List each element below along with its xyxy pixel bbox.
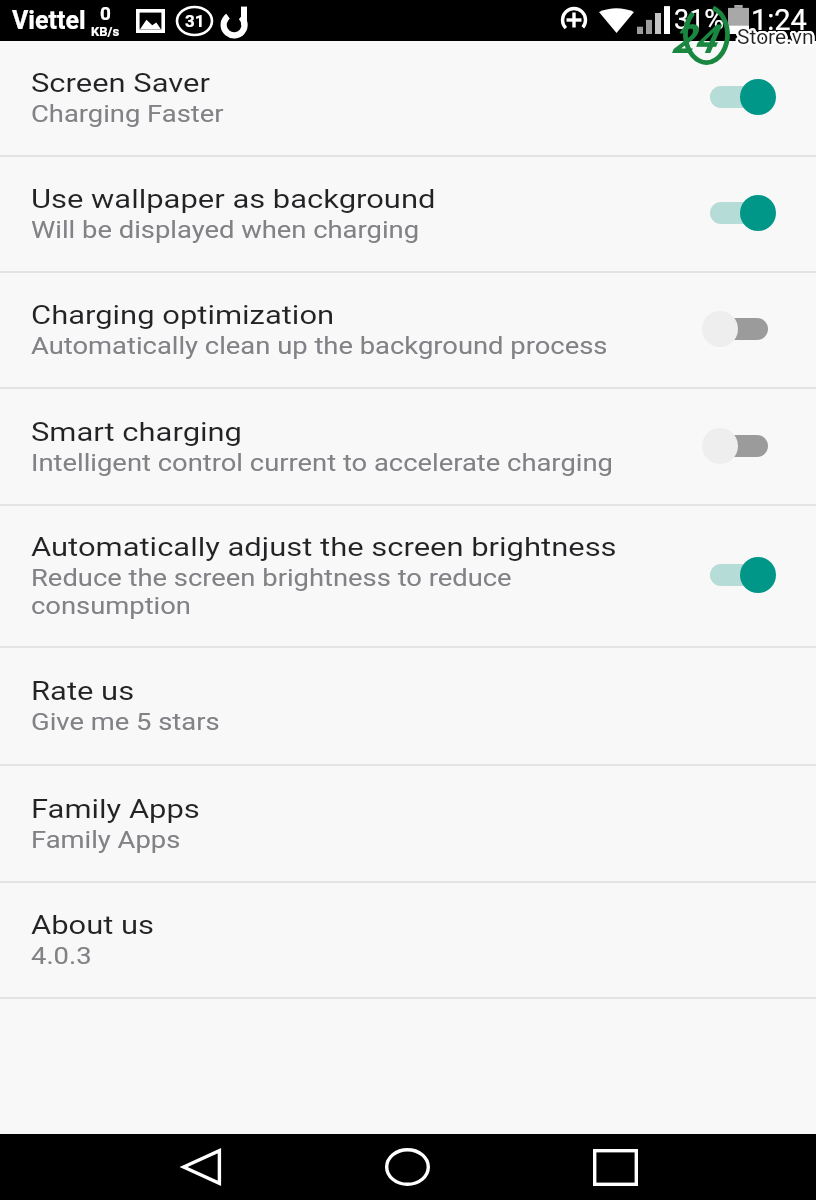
button[interactable]: Rate us	[0, 648, 816, 764]
staticText: Store.vn	[735, 26, 812, 51]
button[interactable]: Home	[347, 1134, 467, 1200]
button[interactable]: Automatically adjust the screen brightne…	[0, 506, 816, 646]
button[interactable]: Toggle Charging optimization	[694, 298, 784, 362]
staticText: Store.vn	[737, 27, 814, 52]
button[interactable]: Charging optimization	[0, 273, 816, 387]
staticText: Store.vn	[735, 25, 812, 50]
staticText: Screen Saver	[31, 68, 211, 98]
staticText: Store.vn	[737, 25, 814, 50]
staticText: Store.vn	[736, 25, 813, 50]
staticText: 24	[672, 16, 717, 63]
staticText: Intelligent control current to accelerat…	[31, 450, 816, 477]
staticText: Store.vn	[738, 23, 815, 48]
staticText: Smart charging	[31, 417, 243, 447]
staticText: Store.vn	[738, 25, 815, 50]
staticText: Use wallpaper as background	[31, 184, 436, 214]
button[interactable]: Toggle Automatically adjust the screen b…	[694, 544, 784, 608]
staticText: Store.vn	[739, 24, 816, 49]
staticText: Automatically clean up the background pr…	[31, 333, 816, 360]
staticText: Family Apps	[31, 794, 200, 824]
staticText: 4.0.3	[31, 943, 816, 970]
staticText: Reduce the screen brightness to reduce c…	[31, 565, 602, 620]
button[interactable]: Toggle Smart charging	[694, 415, 784, 479]
staticText: 1:24	[751, 3, 807, 37]
button[interactable]: Screen Saver	[0, 41, 816, 155]
staticText: Give me 5 stars	[31, 709, 816, 736]
staticText: Store.vn	[736, 23, 813, 48]
staticText: About us	[31, 910, 155, 940]
button[interactable]: Toggle Screen Saver	[694, 66, 784, 130]
button[interactable]: Back	[141, 1134, 261, 1200]
staticText: Family Apps	[31, 827, 816, 854]
staticText: Store.vn	[739, 26, 816, 51]
staticText: Store.vn	[735, 24, 812, 49]
staticText: 31	[185, 11, 205, 31]
staticText: Store.vn	[736, 24, 813, 49]
staticText: KB/s	[91, 24, 120, 39]
staticText: Charging Faster	[31, 101, 816, 128]
staticText: Automatically adjust the screen brightne…	[31, 532, 618, 562]
staticText: Store.vn	[738, 26, 815, 51]
staticText: Store.vn	[737, 26, 814, 51]
staticText: Charging optimization	[31, 300, 334, 330]
button[interactable]: Smart charging	[0, 389, 816, 504]
staticText: Rate us	[31, 676, 134, 706]
button[interactable]: Recent apps	[555, 1134, 675, 1200]
button[interactable]: Use wallpaper as background	[0, 157, 816, 271]
staticText: 31%	[674, 4, 725, 36]
staticText: 0	[100, 2, 111, 24]
staticText: Will be displayed when charging	[31, 217, 816, 244]
staticText: Store.vn	[738, 27, 815, 52]
staticText: Store.vn	[736, 27, 813, 52]
staticText: Store.vn	[737, 24, 814, 49]
staticText: Store.vn	[739, 25, 816, 50]
button[interactable]: Toggle Use wallpaper as background	[694, 182, 784, 246]
staticText: Viettel	[12, 6, 86, 35]
staticText: Store.vn	[738, 24, 815, 49]
button[interactable]: About us	[0, 883, 816, 997]
staticText: Store.vn	[737, 23, 814, 48]
button[interactable]: Family Apps	[0, 766, 816, 881]
staticText: Store.vn	[736, 26, 813, 51]
